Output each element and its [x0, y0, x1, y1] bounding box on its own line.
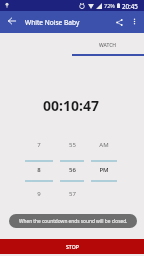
button[interactable]: Back [2, 11, 21, 30]
staticText: White Noise Baby [25, 18, 80, 27]
staticText: 72% [104, 2, 115, 9]
button[interactable]: More options [124, 11, 144, 31]
staticText: 55 [69, 141, 76, 149]
button[interactable]: STOP [0, 239, 144, 254]
button[interactable]: Share [108, 11, 130, 33]
staticText: AM [99, 141, 109, 149]
button[interactable]: 56 [60, 166, 84, 174]
staticText: 9 [37, 190, 41, 198]
staticText: 7 [37, 141, 41, 149]
staticText: When the countdown ends sound will be cl… [19, 218, 128, 225]
staticText: PM [99, 166, 109, 174]
button[interactable]: When the countdown ends sound will be cl… [9, 214, 137, 228]
staticText: 56 [69, 166, 76, 174]
staticText: STOP [66, 243, 79, 250]
button[interactable]: 8 [25, 166, 53, 174]
button[interactable]: PM [91, 166, 117, 174]
staticText: 8 [37, 166, 41, 174]
staticText: 20:45 [122, 2, 138, 10]
staticText: 00:10:47 [43, 96, 99, 115]
button[interactable]: WATCH [72, 33, 144, 57]
staticText: WATCH [99, 42, 117, 49]
staticText: 57 [69, 190, 76, 198]
